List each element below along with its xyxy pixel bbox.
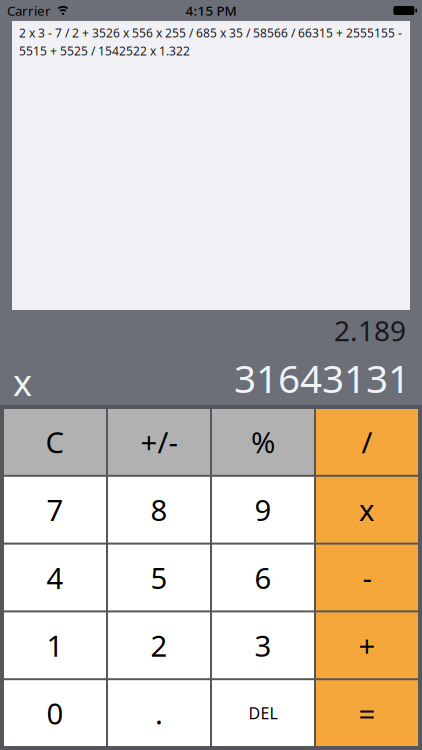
button[interactable]: +/-	[108, 409, 210, 475]
staticText: -	[362, 558, 371, 597]
staticText: 5	[150, 558, 167, 597]
staticText: 2 x 3 - 7 / 2 + 3526 x 556 x 255 / 685 x…	[19, 25, 402, 59]
staticText: 3	[254, 626, 271, 665]
button[interactable]: 5	[108, 545, 210, 610]
button[interactable]: 1	[4, 612, 106, 678]
staticText: DEL	[248, 702, 277, 724]
staticText: =	[358, 694, 375, 733]
button[interactable]: /	[316, 409, 418, 475]
button[interactable]: C	[4, 409, 106, 475]
staticText: 31643131	[234, 352, 410, 404]
staticText: x	[13, 358, 32, 406]
staticText: 4:15 PM	[185, 2, 236, 19]
staticText: /	[361, 422, 372, 461]
staticText: 7	[46, 490, 63, 529]
button[interactable]: 4	[4, 545, 106, 610]
button[interactable]: -	[316, 545, 418, 610]
button[interactable]: 8	[108, 477, 210, 543]
button[interactable]: 9	[212, 477, 314, 543]
staticText: 2	[150, 626, 167, 665]
staticText: Carrier	[7, 2, 51, 19]
staticText: 4	[46, 558, 63, 597]
button[interactable]: 6	[212, 545, 314, 610]
button[interactable]: 7	[4, 477, 106, 543]
button[interactable]: DEL	[212, 680, 314, 746]
button[interactable]: 3	[212, 612, 314, 678]
button[interactable]: x	[316, 477, 418, 543]
staticText: x	[359, 490, 375, 529]
staticText: 6	[254, 558, 271, 597]
staticText: 2.189	[334, 312, 406, 349]
button[interactable]: %	[212, 409, 314, 475]
staticText: 9	[254, 490, 271, 529]
staticText: .	[155, 694, 163, 733]
staticText: +/-	[140, 422, 177, 461]
staticText: 1	[46, 626, 63, 665]
staticText: %	[251, 422, 275, 461]
button[interactable]: +	[316, 612, 418, 678]
button[interactable]: 2	[108, 612, 210, 678]
button[interactable]: .	[108, 680, 210, 746]
staticText: C	[45, 422, 64, 461]
staticText: +	[358, 626, 375, 665]
button[interactable]: =	[316, 680, 418, 746]
staticText: 8	[150, 490, 167, 529]
staticText: 0	[46, 694, 63, 733]
button[interactable]: 0	[4, 680, 106, 746]
